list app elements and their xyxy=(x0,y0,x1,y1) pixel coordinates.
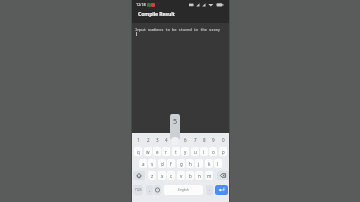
button[interactable]: 2 xyxy=(144,136,152,143)
staticText: o xyxy=(212,149,215,155)
button[interactable]: c xyxy=(167,171,175,180)
button[interactable]: t xyxy=(172,147,180,156)
button[interactable]: m xyxy=(205,171,213,180)
staticText: z xyxy=(151,173,154,179)
staticText: , xyxy=(149,187,151,193)
button[interactable] xyxy=(217,171,229,180)
staticText: . xyxy=(209,187,211,193)
staticText: y xyxy=(184,149,187,155)
staticText: 2 xyxy=(147,137,150,143)
button[interactable]: ?123 xyxy=(133,185,143,195)
button[interactable]: 6 xyxy=(181,136,189,143)
staticText: q xyxy=(137,149,140,155)
staticText: v xyxy=(180,173,183,179)
button[interactable]: 9 xyxy=(209,136,217,143)
button[interactable] xyxy=(215,185,228,195)
button[interactable]: n xyxy=(195,171,203,180)
staticText: 12:18 xyxy=(136,2,146,7)
button[interactable]: v xyxy=(177,171,185,180)
staticText: 6 xyxy=(184,137,187,143)
staticText: h xyxy=(189,161,192,167)
button[interactable]: 8 xyxy=(200,136,208,143)
button[interactable]: b xyxy=(186,171,194,180)
button[interactable]: l xyxy=(214,159,222,168)
button[interactable]: g xyxy=(177,159,185,168)
button[interactable]: 7 xyxy=(191,136,199,143)
button[interactable] xyxy=(133,171,145,180)
staticText: Input numbers to be stored in the array xyxy=(135,27,220,32)
staticText: r xyxy=(165,149,167,155)
staticText: i xyxy=(203,149,205,155)
staticText: s xyxy=(151,161,154,167)
staticText: p xyxy=(222,149,225,155)
staticText: u xyxy=(194,149,197,155)
button[interactable]: a xyxy=(139,159,147,168)
button[interactable]: w xyxy=(144,147,152,156)
button[interactable]: English xyxy=(164,185,203,195)
staticText: n xyxy=(198,173,201,179)
staticText: 5 xyxy=(173,116,178,126)
staticText: w xyxy=(146,149,150,155)
staticText: k xyxy=(208,161,211,167)
button[interactable]: Compile Result xyxy=(138,10,175,17)
button[interactable] xyxy=(154,185,161,195)
button[interactable]: , xyxy=(146,185,153,195)
staticText: a xyxy=(142,161,145,167)
staticText: 0 xyxy=(222,137,225,143)
staticText: 3 xyxy=(156,137,159,143)
staticText: c xyxy=(170,173,173,179)
staticText: g xyxy=(180,161,183,167)
staticText: m xyxy=(207,173,212,179)
button[interactable]: f xyxy=(167,159,175,168)
staticText: b xyxy=(189,173,192,179)
button[interactable]: 1 xyxy=(134,136,142,143)
staticText: ?123 xyxy=(135,188,142,192)
staticText: l xyxy=(217,161,219,167)
staticText: 7 xyxy=(194,137,197,143)
staticText: 4 xyxy=(165,137,168,143)
button[interactable]: 0 xyxy=(219,136,227,143)
button[interactable]: p xyxy=(219,147,227,156)
button[interactable]: h xyxy=(186,159,194,168)
button[interactable]: 3 xyxy=(153,136,161,143)
staticText: 9 xyxy=(212,137,215,143)
staticText: f xyxy=(170,161,172,167)
staticText: d xyxy=(161,161,164,167)
button[interactable]: o xyxy=(209,147,217,156)
staticText: 1 xyxy=(137,137,140,143)
staticText: t xyxy=(175,149,177,155)
staticText: English xyxy=(178,188,189,192)
staticText: e xyxy=(156,149,159,155)
staticText: 8 xyxy=(203,137,206,143)
button[interactable]: z xyxy=(148,171,156,180)
button[interactable]: q xyxy=(134,147,142,156)
button[interactable]: u xyxy=(191,147,199,156)
button[interactable]: x xyxy=(158,171,166,180)
button[interactable]: d xyxy=(158,159,166,168)
button[interactable]: j xyxy=(195,159,203,168)
button[interactable]: 4 xyxy=(162,136,170,143)
button[interactable]: y xyxy=(181,147,189,156)
button[interactable]: e xyxy=(153,147,161,156)
button[interactable]: i xyxy=(200,147,208,156)
button[interactable]: . xyxy=(206,185,213,195)
button[interactable]: s xyxy=(148,159,156,168)
button[interactable]: r xyxy=(162,147,170,156)
button[interactable]: k xyxy=(205,159,213,168)
staticText: x xyxy=(161,173,164,179)
staticText: j xyxy=(198,161,200,167)
staticText: Compile Result xyxy=(138,10,175,17)
